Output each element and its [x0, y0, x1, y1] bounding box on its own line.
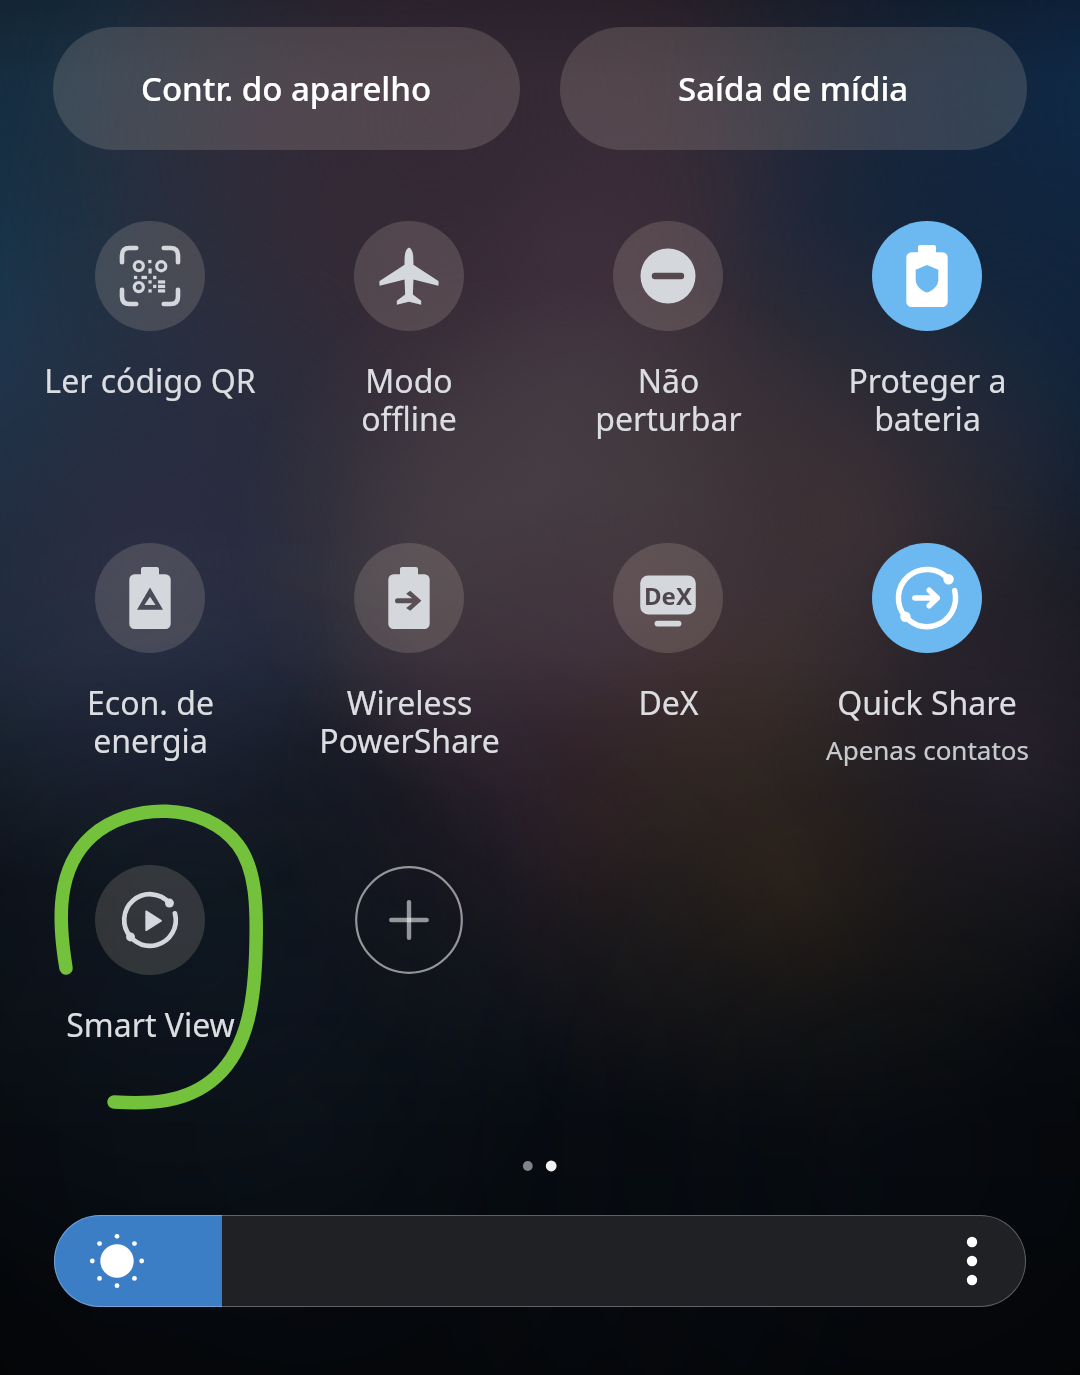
button[interactable]: Modo offline [280, 221, 538, 440]
staticText: Smart View [66, 1003, 235, 1047]
staticText: Contr. do aparelho [141, 66, 432, 111]
other: Quick Share [872, 543, 982, 653]
button[interactable]: Proteger a bateria [798, 221, 1056, 440]
staticText: Econ. de energia [87, 681, 214, 762]
other: Wireless PowerShare [354, 543, 464, 653]
button[interactable]: Wireless PowerShare [280, 543, 538, 762]
button[interactable]: Mais opções [54, 1215, 1026, 1307]
other: Smart View [95, 865, 205, 975]
other: Modo offline [354, 221, 464, 331]
staticText: Modo offline [361, 359, 457, 440]
other: Não perturbar [613, 221, 723, 331]
staticText: Quick Share [837, 681, 1017, 725]
button[interactable]: Economia de energia [21, 543, 279, 762]
staticText: Proteger a bateria [848, 359, 1007, 440]
other: Ler código QR [95, 221, 205, 331]
button[interactable]: Mais opções [948, 1237, 996, 1285]
staticText: Não perturbar [595, 359, 742, 440]
button[interactable]: Smart View [21, 865, 279, 1047]
button[interactable]: Saída de mídia [560, 27, 1027, 150]
staticText: DeX [644, 579, 692, 612]
other: DeX [613, 543, 723, 653]
other: Economia de energia [95, 543, 205, 653]
button[interactable]: Não perturbar [539, 221, 797, 440]
button[interactable]: Adicionar [354, 865, 464, 975]
button[interactable]: Quick Share [798, 543, 1056, 767]
staticText: Saída de mídia [678, 66, 909, 111]
button[interactable]: Contr. do aparelho [53, 27, 520, 150]
staticText: DeX [638, 681, 699, 725]
staticText: Apenas contatos [826, 732, 1029, 767]
other: Proteger a bateria [872, 221, 982, 331]
button[interactable]: Ler código QR [21, 221, 279, 403]
staticText: Wireless PowerShare [319, 681, 500, 762]
button[interactable]: DeX [539, 543, 797, 725]
staticText: Ler código QR [44, 359, 256, 403]
